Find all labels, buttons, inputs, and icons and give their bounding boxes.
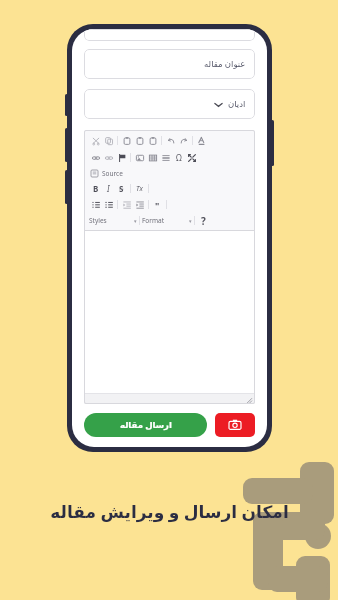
button[interactable]: Indent (133, 198, 146, 211)
button[interactable]: Unlink (102, 151, 115, 164)
button[interactable]: Camera (215, 413, 255, 437)
button[interactable]: Maximize (185, 151, 198, 164)
button[interactable]: Bulleted list (102, 198, 115, 211)
button[interactable]: Anchor (115, 151, 128, 164)
staticText: Ω (176, 152, 182, 163)
button[interactable]: Cut (89, 134, 102, 147)
button[interactable]: Block quote (151, 198, 164, 211)
button[interactable]: Spell check (195, 134, 208, 147)
button[interactable]: Copy (102, 134, 115, 147)
staticText: ▾ (134, 218, 137, 224)
staticText: امکان ارسال و ویرایش مقاله (50, 500, 289, 523)
button[interactable]: Outdent (120, 198, 133, 211)
button[interactable]: Redo (177, 134, 190, 147)
staticText: ارسال مقاله (120, 419, 172, 431)
button[interactable]: Image (133, 151, 146, 164)
button[interactable]: Format (142, 216, 192, 225)
button[interactable]: Remove format (133, 182, 146, 195)
staticText: ▾ (189, 218, 192, 224)
button[interactable]: Styles (89, 216, 137, 225)
button[interactable]: Italic (102, 182, 115, 195)
button[interactable]: Link (89, 151, 102, 164)
staticText: S (119, 183, 124, 194)
staticText: I (107, 183, 110, 194)
staticText: Format (142, 216, 165, 225)
button[interactable]: Source (89, 168, 123, 179)
staticText: عنوان مقاله (204, 58, 246, 70)
staticText: Tx (136, 184, 143, 194)
button[interactable]: ارسال مقاله (84, 413, 207, 437)
staticText: " (155, 199, 160, 211)
button[interactable]: Paste 0 (120, 134, 133, 147)
button[interactable]: Table (146, 151, 159, 164)
button[interactable]: About (197, 214, 210, 227)
staticText: Styles (89, 216, 107, 225)
button[interactable] (84, 29, 255, 41)
staticText: Source (102, 169, 123, 178)
button[interactable] (84, 231, 255, 393)
button[interactable]: Paste 1 (133, 134, 146, 147)
button[interactable]: Strike (115, 182, 128, 195)
button[interactable]: Bold (89, 182, 102, 195)
staticText: ? (201, 214, 206, 227)
button[interactable]: عنوان مقاله (84, 49, 255, 79)
button[interactable]: Paste 2 (146, 134, 159, 147)
button[interactable]: Undo (164, 134, 177, 147)
button[interactable]: ادیان (84, 89, 255, 119)
staticText: ادیان (228, 99, 246, 109)
staticText: B (93, 183, 99, 194)
button[interactable]: Horizontal rule (159, 151, 172, 164)
button[interactable]: Special character (172, 151, 185, 164)
button[interactable]: Numbered list (89, 198, 102, 211)
